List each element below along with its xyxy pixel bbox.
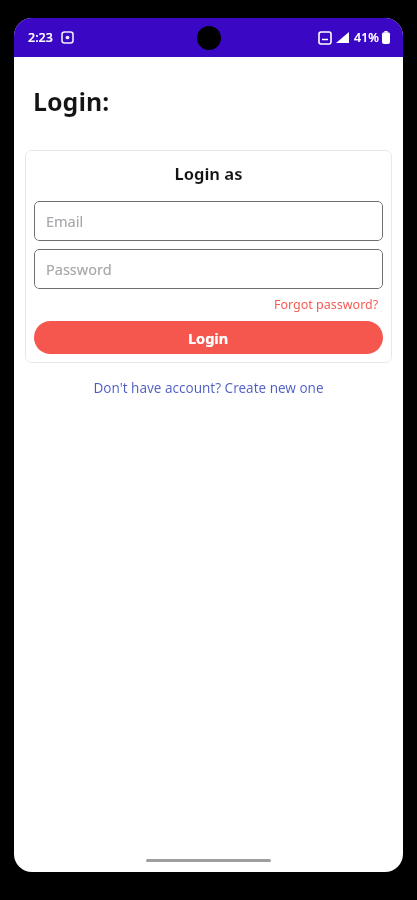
staticText: Email	[46, 211, 84, 231]
staticText: 2:23	[28, 29, 53, 46]
staticText: Login	[188, 328, 229, 348]
button[interactable]: Password	[34, 249, 383, 289]
button[interactable]: Email	[34, 201, 383, 241]
button[interactable]: Login	[34, 321, 383, 354]
staticText: Login as	[174, 162, 243, 184]
staticText: Password	[46, 259, 112, 279]
staticText: Login:	[33, 84, 110, 118]
other: Home gesture handle	[14, 848, 403, 872]
staticText: 41%	[354, 29, 379, 46]
button[interactable]: Forgot password?	[270, 294, 383, 315]
button[interactable]: Don't have account? Create new one	[85, 375, 332, 401]
